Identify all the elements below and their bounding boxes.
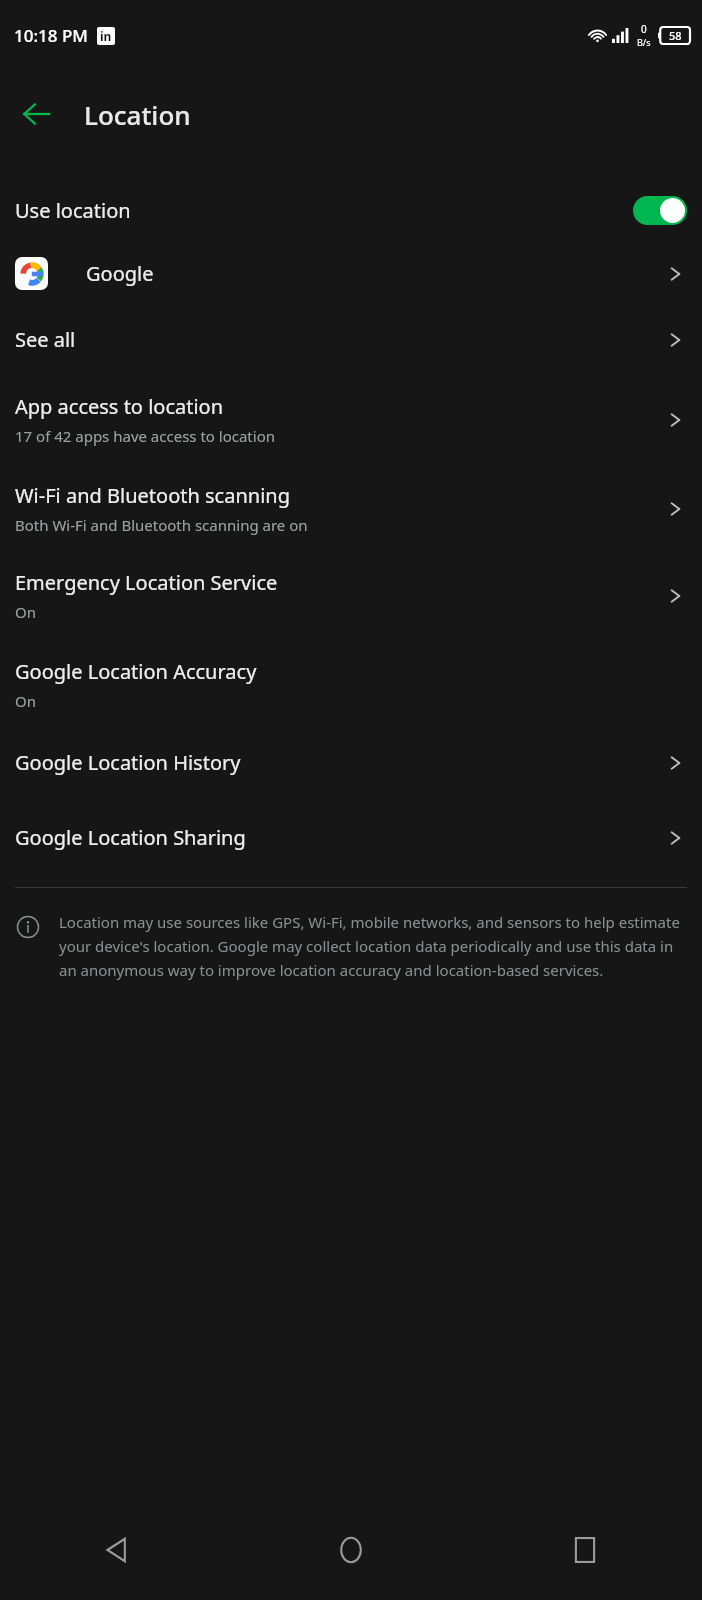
staticText: 10:18 PM xyxy=(14,24,88,47)
staticText: B/s xyxy=(637,36,651,48)
staticText: 0 xyxy=(641,22,647,36)
button[interactable]: Emergency Location Service xyxy=(0,561,702,630)
staticText: Location may use sources like GPS, Wi-Fi… xyxy=(59,912,680,980)
button[interactable]: Google xyxy=(0,245,702,302)
button[interactable]: Back xyxy=(0,1500,234,1600)
staticText: Emergency Location Service xyxy=(15,569,278,596)
button[interactable]: Back xyxy=(10,88,62,140)
staticText: On xyxy=(15,691,36,711)
staticText: App access to location xyxy=(15,393,224,420)
button[interactable]: See all xyxy=(0,316,702,363)
staticText: Google Location Sharing xyxy=(15,824,246,851)
staticText: Google Location Accuracy xyxy=(15,658,257,685)
staticText: 17 of 42 apps have access to location xyxy=(15,426,275,446)
staticText: Both Wi-Fi and Bluetooth scanning are on xyxy=(15,515,308,535)
button[interactable]: Google Location History xyxy=(0,739,702,786)
staticText: See all xyxy=(15,326,76,353)
staticText: Location xyxy=(84,97,191,132)
button[interactable]: Google Location Accuracy xyxy=(0,650,702,719)
button[interactable]: Google Location Sharing xyxy=(0,814,702,861)
button[interactable]: Recent apps xyxy=(468,1500,702,1600)
staticText: Google xyxy=(86,260,154,287)
staticText: Google Location History xyxy=(15,749,241,776)
button[interactable]: Home xyxy=(234,1500,468,1600)
staticText: Use location xyxy=(15,197,131,224)
staticText: On xyxy=(15,602,36,622)
staticText: in xyxy=(100,28,112,44)
staticText: 58 xyxy=(669,28,682,43)
button[interactable]: Use location xyxy=(0,184,702,237)
button[interactable]: Wi-Fi and Bluetooth scanning xyxy=(0,474,702,543)
staticText: Wi-Fi and Bluetooth scanning xyxy=(15,482,290,509)
button[interactable]: App access to location xyxy=(0,385,702,454)
